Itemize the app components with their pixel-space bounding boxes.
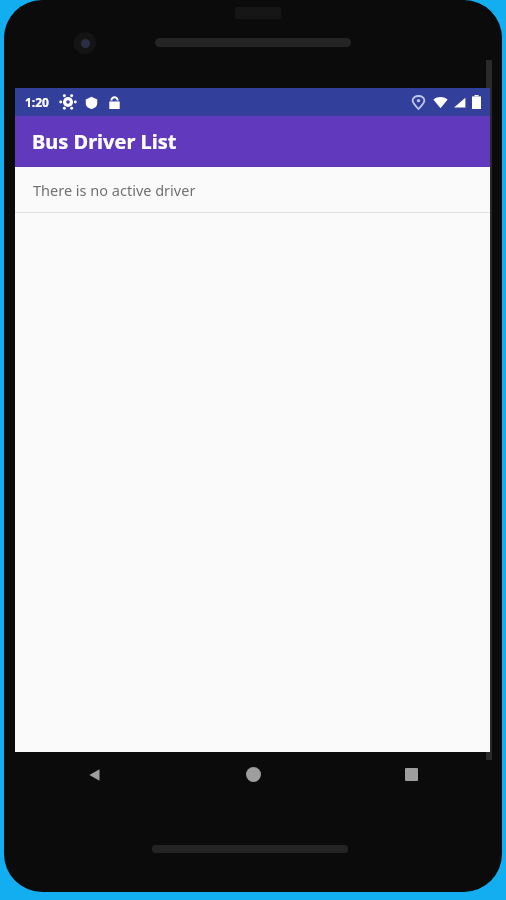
staticText: There is no active driver bbox=[33, 180, 196, 200]
button[interactable]: Recent apps bbox=[332, 752, 490, 797]
button[interactable]: Bus Driver List bbox=[15, 116, 490, 167]
staticText: 1:20 bbox=[25, 94, 49, 110]
button[interactable]: Back bbox=[15, 752, 174, 797]
button[interactable]: There is no active driver bbox=[15, 167, 490, 212]
button[interactable]: Home bbox=[174, 752, 332, 797]
staticText: Bus Driver List bbox=[32, 128, 177, 155]
